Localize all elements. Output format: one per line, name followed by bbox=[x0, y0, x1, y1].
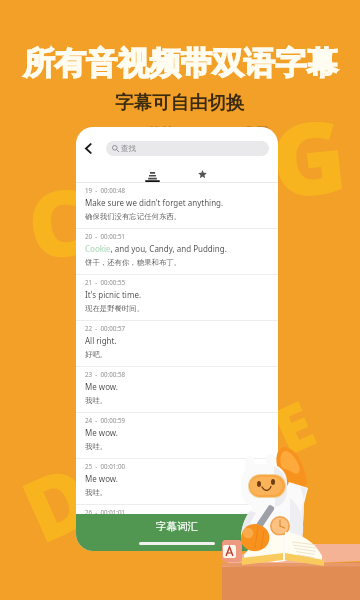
button[interactable]: 25 - 00:01:00 bbox=[76, 459, 278, 504]
staticText: 字幕可自由切换 bbox=[115, 91, 245, 114]
staticText: C bbox=[20, 156, 96, 287]
staticText: 好吧。 bbox=[85, 350, 108, 359]
staticText: G bbox=[264, 84, 352, 227]
button[interactable]: 26 - 00:01:01 bbox=[76, 505, 278, 514]
staticText: 字幕词汇 bbox=[156, 520, 198, 533]
staticText: 25 - 00:01:00 bbox=[85, 462, 126, 470]
staticText: 19 - 00:00:48 bbox=[85, 186, 126, 194]
staticText: 24 - 00:00:59 bbox=[85, 416, 126, 424]
button[interactable]: 19 - 00:00:48 bbox=[76, 183, 278, 228]
staticText: 确保我们没有忘记任何东西。 bbox=[85, 212, 182, 221]
staticText: D bbox=[4, 435, 110, 568]
staticText: 所有音视频带双语字幕 bbox=[23, 44, 338, 84]
staticText: It's picnic time. bbox=[85, 289, 142, 300]
button[interactable]: Subtitles tab bbox=[132, 160, 172, 182]
staticText: E bbox=[260, 379, 328, 473]
staticText: 查找 bbox=[121, 144, 136, 153]
button[interactable]: Back bbox=[76, 136, 100, 160]
staticText: 26 - 00:01:01 bbox=[85, 508, 126, 514]
button[interactable]: 字幕词汇 bbox=[76, 514, 278, 551]
staticText: Cookie, and you, Candy, and Pudding. bbox=[85, 243, 227, 254]
button[interactable]: 21 - 00:00:55 bbox=[76, 275, 278, 320]
button[interactable]: 22 - 00:00:57 bbox=[76, 321, 278, 366]
staticText: All right. bbox=[85, 335, 117, 346]
staticText: 我哇。 bbox=[85, 396, 108, 405]
button[interactable]: 24 - 00:00:59 bbox=[76, 413, 278, 458]
staticText: Me wow. bbox=[85, 381, 118, 392]
staticText: 20 - 00:00:51 bbox=[85, 232, 126, 240]
staticText: 现在是野餐时间。 bbox=[85, 304, 145, 313]
staticText: Me wow. bbox=[85, 473, 118, 484]
staticText: Make sure we didn't forget anything. bbox=[85, 197, 224, 208]
button[interactable]: 查找 bbox=[106, 141, 269, 156]
staticText: 饼干，还有你，糖果和布丁。 bbox=[85, 258, 182, 267]
button[interactable]: Favorites tab bbox=[182, 160, 222, 182]
staticText: 我哇。 bbox=[85, 442, 108, 451]
staticText: 我哇。 bbox=[85, 488, 108, 497]
staticText: 21 - 00:00:55 bbox=[85, 278, 126, 286]
button[interactable]: 23 - 00:00:58 bbox=[76, 367, 278, 412]
staticText: 23 - 00:00:58 bbox=[85, 370, 126, 378]
staticText: 22 - 00:00:57 bbox=[85, 324, 126, 332]
staticText: Me wow. bbox=[85, 427, 118, 438]
button[interactable]: 20 - 00:00:51 bbox=[76, 229, 278, 274]
